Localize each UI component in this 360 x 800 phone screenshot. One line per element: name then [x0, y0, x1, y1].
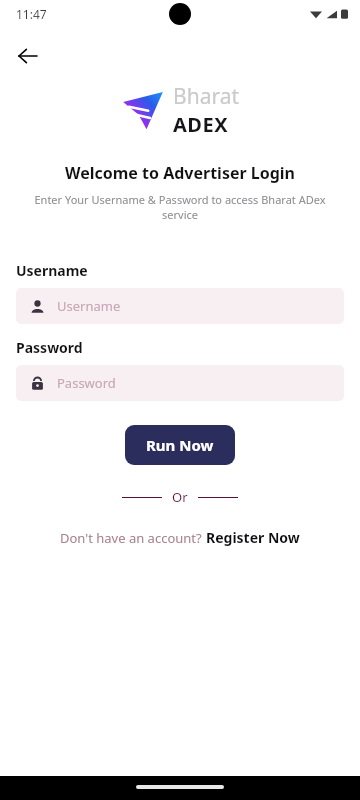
staticText: Username — [16, 261, 88, 280]
staticText: Don't have an account? — [60, 529, 206, 547]
staticText: Password — [57, 374, 116, 392]
button[interactable]: Run Now — [125, 425, 235, 465]
button[interactable]: Back — [8, 36, 48, 76]
staticText: Or — [172, 488, 188, 506]
staticText: Enter Your Username & Password to access… — [16, 192, 344, 222]
staticText: Bharat — [173, 82, 240, 111]
staticText: Register Now — [206, 528, 300, 547]
button[interactable]: Password — [16, 365, 344, 401]
staticText: Run Now — [146, 435, 214, 455]
staticText: Password — [16, 338, 83, 357]
button[interactable]: Register Now — [206, 528, 300, 547]
staticText: Welcome to Advertiser Login — [0, 162, 360, 184]
button[interactable]: Username — [16, 288, 344, 324]
staticText: 11:47 — [16, 6, 47, 22]
staticText: Username — [57, 297, 121, 315]
staticText: ADEX — [173, 111, 229, 138]
